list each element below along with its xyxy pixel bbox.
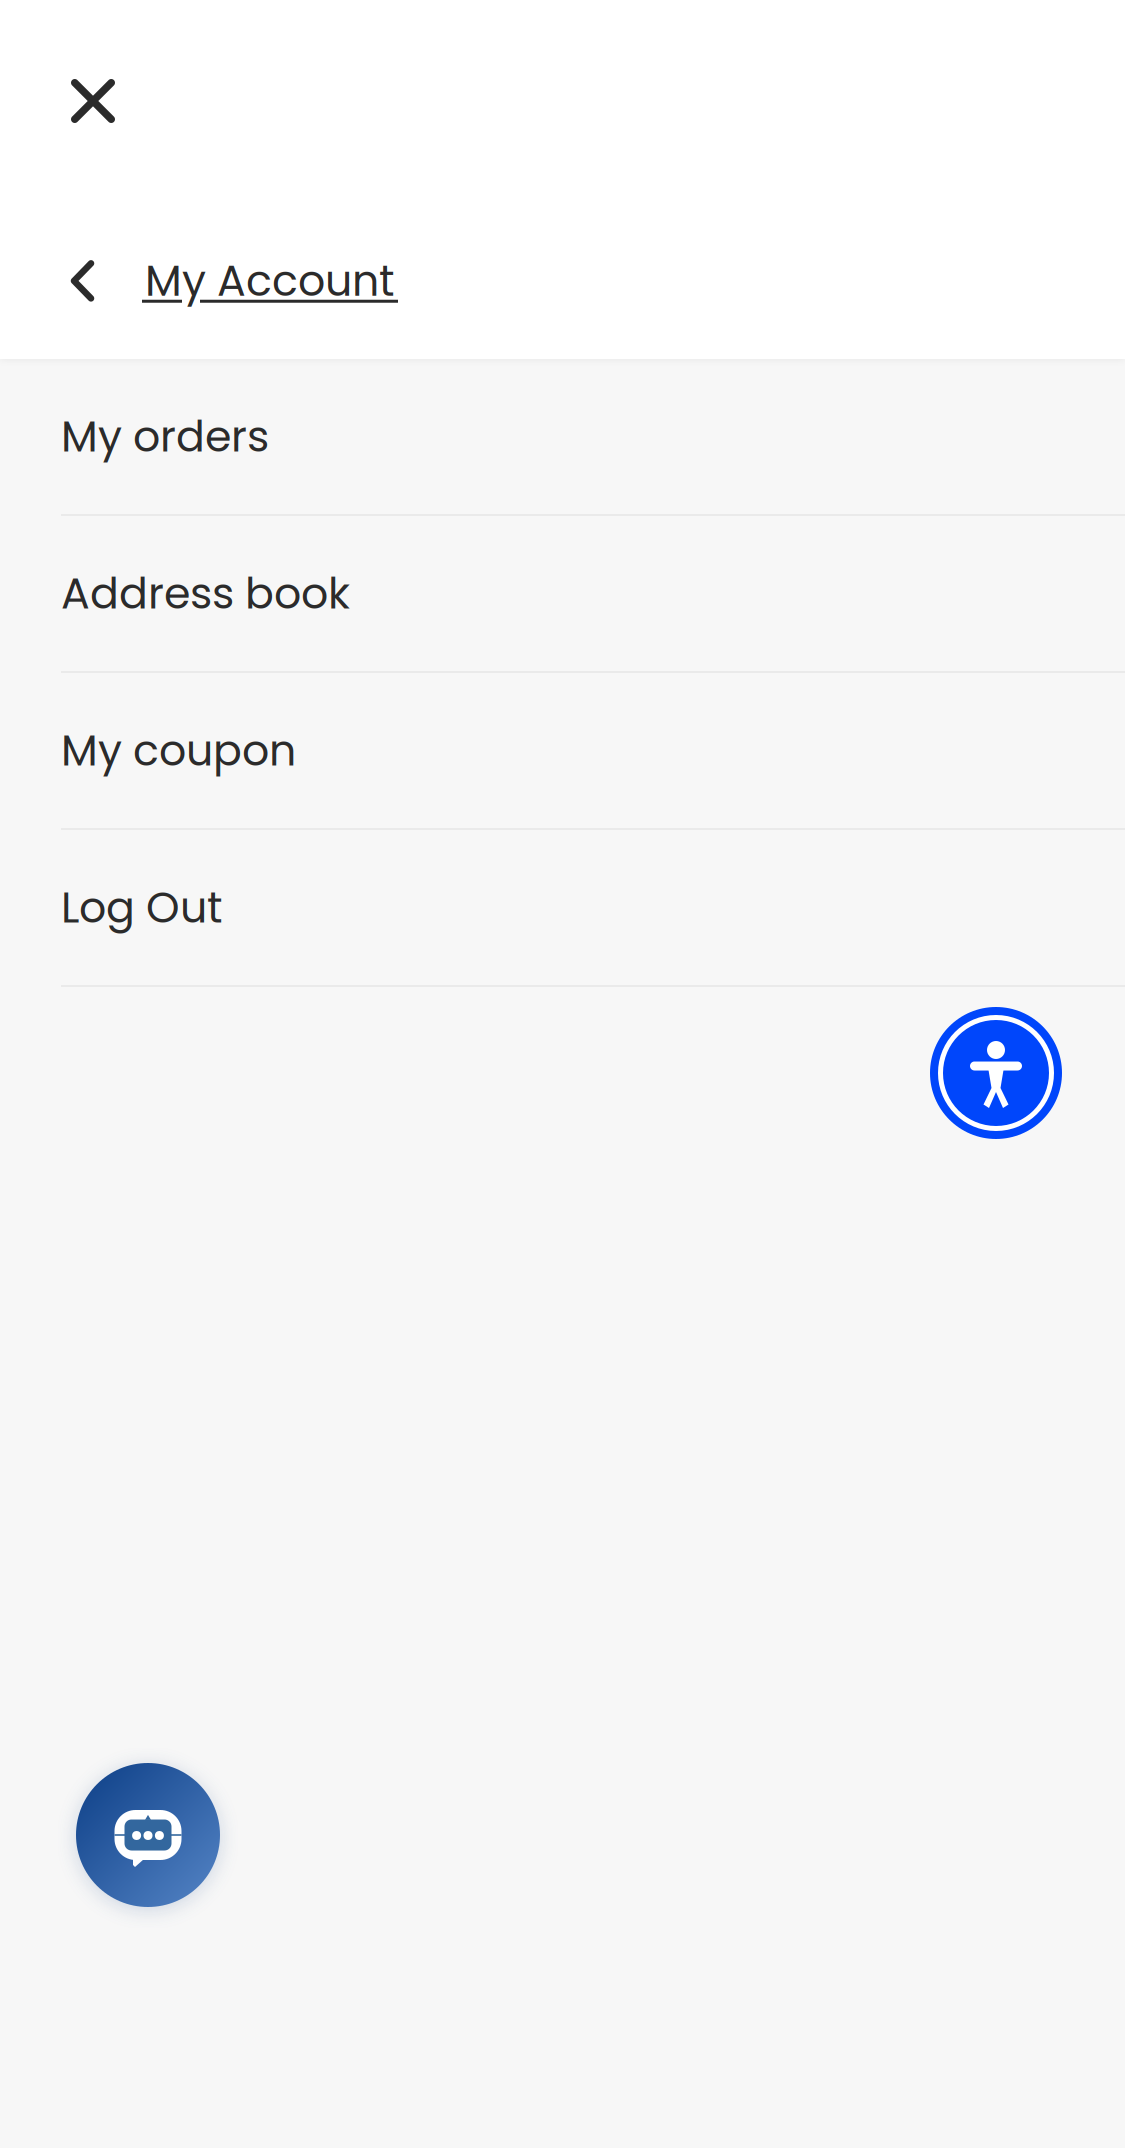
button[interactable]: My coupon — [0, 673, 1125, 830]
staticText: My coupon — [61, 721, 296, 780]
button[interactable]: My Account — [57, 241, 415, 321]
button[interactable]: My orders — [0, 359, 1125, 516]
button[interactable]: Close — [51, 59, 135, 143]
staticText: My orders — [61, 407, 269, 466]
button[interactable]: Accessibility options — [930, 1007, 1062, 1139]
staticText: Log Out — [61, 878, 223, 937]
staticText: Address book — [61, 564, 350, 623]
button[interactable]: Chat — [76, 1763, 220, 1907]
staticText: My Account — [145, 251, 395, 311]
button[interactable]: Log Out — [0, 830, 1125, 987]
button[interactable]: Address book — [0, 516, 1125, 673]
